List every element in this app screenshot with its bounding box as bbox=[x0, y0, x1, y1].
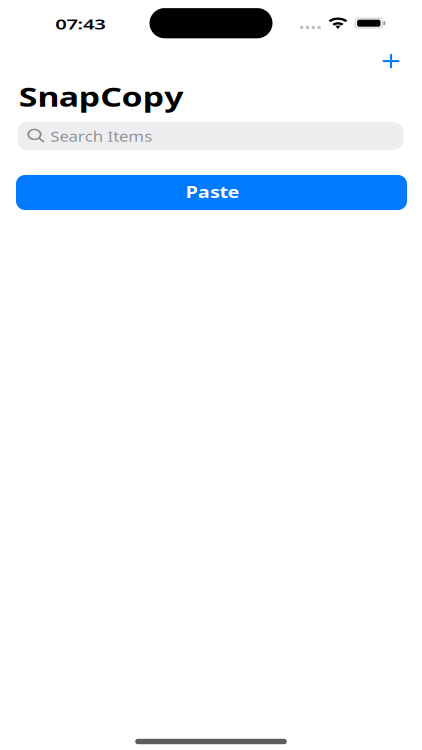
staticText: Search Items bbox=[57, 126, 146, 146]
staticText: SnapCopy bbox=[39, 80, 162, 113]
staticText: Paste bbox=[193, 182, 233, 202]
button[interactable]: Paste bbox=[16, 175, 407, 210]
button[interactable]: Search Items bbox=[17, 122, 403, 150]
button[interactable]: Add item bbox=[370, 43, 412, 79]
staticText: 07:43 bbox=[62, 14, 98, 34]
